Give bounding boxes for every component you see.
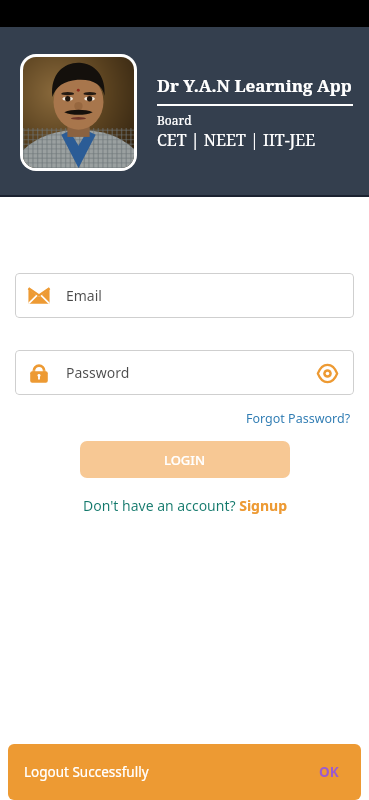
button[interactable]: Password	[15, 350, 354, 395]
staticText: Password	[66, 363, 314, 382]
staticText: Email	[66, 286, 340, 305]
staticText: OK	[319, 763, 339, 781]
button[interactable]: LOGIN	[80, 441, 290, 478]
staticText: CET | NEET | IIT-JEE	[157, 129, 316, 151]
staticText: Forgot Password?	[246, 410, 351, 427]
button[interactable]: Don't have an account? Signup	[79, 494, 291, 517]
staticText: Don't have an account? Signup	[83, 496, 287, 515]
other: Password	[28, 362, 50, 384]
staticText: LOGIN	[164, 451, 206, 469]
staticText: Board	[157, 112, 192, 128]
staticText: Dr Y.A.N Learning App	[157, 74, 352, 97]
button[interactable]: OK	[315, 759, 343, 785]
button[interactable]: Email	[15, 273, 354, 318]
other: Email	[28, 285, 50, 307]
staticText: Logout Successfully	[24, 763, 315, 781]
button[interactable]: Forgot Password?	[244, 408, 353, 429]
button[interactable]: Show password	[314, 360, 340, 386]
